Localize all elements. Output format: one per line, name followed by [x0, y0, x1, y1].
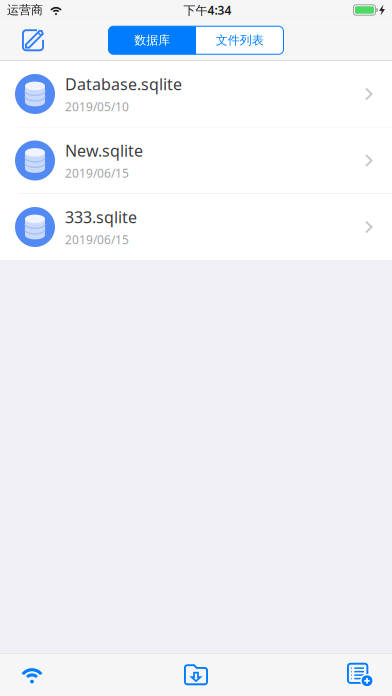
staticText: 文件列表	[216, 33, 264, 48]
button[interactable]: 数据库	[108, 26, 196, 54]
staticText: 2019/06/15	[65, 232, 129, 248]
staticText: 2019/05/10	[65, 99, 129, 115]
button[interactable]: Compose	[0, 20, 58, 61]
staticText: 下午4:34	[183, 2, 231, 18]
button[interactable]: 文件列表	[196, 26, 283, 54]
staticText: 2019/06/15	[65, 165, 129, 181]
staticText: New.sqlite	[65, 140, 143, 161]
button[interactable]: Database.sqlite	[0, 61, 392, 127]
staticText: 运营商	[7, 3, 43, 17]
staticText: 数据库	[134, 33, 170, 48]
staticText: 333.sqlite	[65, 206, 137, 228]
button[interactable]: New document	[335, 653, 385, 696]
button[interactable]: 333.sqlite	[0, 194, 392, 260]
button[interactable]: Wi-Fi	[7, 653, 57, 696]
button[interactable]: New.sqlite	[0, 127, 392, 193]
button[interactable]: Downloads	[172, 653, 220, 696]
staticText: Database.sqlite	[65, 73, 182, 95]
